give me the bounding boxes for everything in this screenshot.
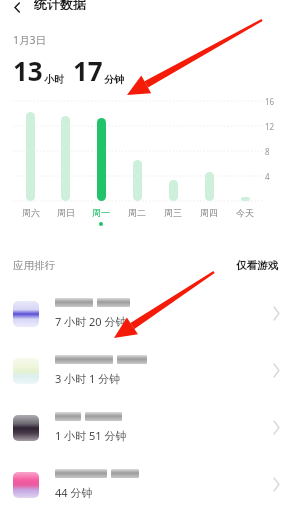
button[interactable]: 周四 [191, 207, 227, 218]
button[interactable]: 1 小时 51 分钟 [0, 399, 293, 456]
button[interactable]: 周六 [13, 207, 48, 218]
staticText: 13 [13, 53, 43, 88]
staticText: 1 小时 51 分钟 [55, 428, 127, 443]
button[interactable]: 周三 [155, 207, 191, 218]
button[interactable]: 仅看游戏 [234, 257, 280, 274]
staticText: 7 小时 20 分钟 [55, 314, 127, 329]
staticText: 分钟 [104, 73, 124, 86]
staticText: 周六 [22, 207, 40, 218]
button[interactable]: 周二 [119, 207, 155, 218]
staticText: 应用排行 [13, 259, 55, 272]
staticText: 1月3日 [13, 33, 47, 47]
staticText: 3 小时 1 分钟 [55, 371, 121, 386]
staticText: 16 [265, 96, 275, 107]
staticText: 44 分钟 [55, 485, 93, 500]
other: Open details [273, 307, 280, 320]
staticText: 周三 [164, 207, 182, 218]
staticText: 仅看游戏 [236, 259, 278, 272]
button[interactable]: 周日 [48, 207, 83, 218]
staticText: 17 [73, 53, 103, 88]
other: Open details [273, 364, 280, 377]
other: Open details [273, 421, 280, 434]
button[interactable]: 3 小时 1 分钟 [0, 342, 293, 399]
staticText: 12 [265, 121, 275, 132]
button[interactable]: 44 分钟 [0, 456, 293, 513]
staticText: 周二 [128, 207, 146, 218]
staticText: 今天 [236, 207, 254, 218]
staticText: 小时 [44, 73, 64, 86]
button[interactable]: Back [0, 0, 34, 14]
staticText: 8 [265, 146, 270, 157]
staticText: 周四 [200, 207, 218, 218]
staticText: 4 [265, 171, 270, 182]
staticText: 统计数据 [34, 0, 86, 10]
button[interactable]: 周一 [83, 207, 119, 226]
button[interactable]: 今天 [227, 207, 263, 218]
staticText: 周日 [57, 207, 75, 218]
button[interactable]: 7 小时 20 分钟 [0, 285, 293, 342]
other: Open details [273, 478, 280, 491]
staticText: 周一 [92, 207, 110, 218]
